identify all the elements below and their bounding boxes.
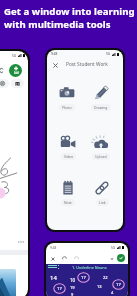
- button[interactable]: Done: [117, 254, 125, 262]
- button[interactable]: Redo: [73, 255, 80, 262]
- staticText: Photo: [62, 105, 72, 110]
- staticText: 13: [97, 284, 102, 289]
- button[interactable]: Close: [50, 60, 60, 70]
- staticText: Video: [64, 154, 73, 159]
- button[interactable]: Calendar: [11, 79, 24, 88]
- staticText: Add: [14, 71, 19, 75]
- button[interactable]: Photo: [55, 84, 79, 112]
- staticText: with multimedia tools: [4, 18, 111, 31]
- button[interactable]: Undo: [61, 255, 68, 262]
- staticText: 22: [103, 275, 108, 280]
- staticText: 5G: [106, 52, 111, 56]
- staticText: 17: [116, 282, 121, 288]
- staticText: Link: [99, 200, 106, 205]
- staticText: Note: [64, 200, 72, 205]
- staticText: 9:43: [50, 246, 57, 250]
- staticText: 1. Underline Nouns: [72, 265, 107, 270]
- button[interactable]: Drawing: [87, 84, 115, 112]
- staticText: 17: [57, 286, 62, 292]
- staticText: Upload: [95, 154, 107, 159]
- staticText: Drawing: [94, 105, 108, 110]
- button[interactable]: List view: [0, 79, 9, 88]
- staticText: 5G: [111, 246, 116, 250]
- staticText: 14: [50, 274, 57, 282]
- button[interactable]: Upload: [88, 133, 114, 161]
- staticText: 9: [71, 292, 74, 296]
- staticText: Post Student Work: [66, 61, 108, 68]
- staticText: 9:43: [51, 52, 58, 56]
- button[interactable]: Video: [56, 133, 80, 161]
- staticText: 4: [111, 290, 114, 295]
- staticText: 17: [81, 275, 86, 281]
- staticText: 10: [70, 277, 76, 283]
- staticText: 19: [70, 285, 75, 290]
- button[interactable]: Link: [90, 179, 114, 207]
- button[interactable]: Note: [56, 179, 80, 207]
- button[interactable]: More: [108, 255, 115, 262]
- staticText: Get a window into learning: [4, 5, 135, 18]
- button[interactable]: Add: [9, 64, 22, 77]
- staticText: 5G: [12, 54, 17, 58]
- button[interactable]: Close: [49, 255, 56, 262]
